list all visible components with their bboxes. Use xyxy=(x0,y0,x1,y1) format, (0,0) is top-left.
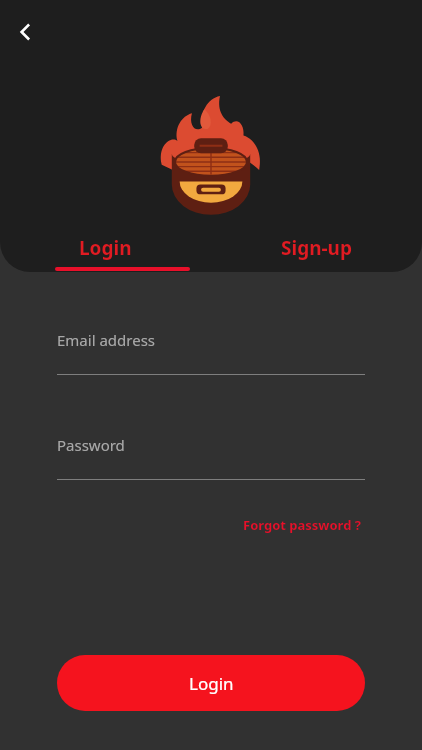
staticText: Forgot password ? xyxy=(243,516,361,534)
staticText: Login xyxy=(79,235,132,261)
button[interactable]: Login xyxy=(57,655,365,711)
staticText: Email address xyxy=(57,330,156,350)
button[interactable]: Login xyxy=(0,224,211,272)
button[interactable]: Back xyxy=(8,15,42,49)
staticText: Sign-up xyxy=(281,235,352,261)
button[interactable]: Password xyxy=(57,435,365,480)
button[interactable]: Forgot password ? xyxy=(239,512,365,538)
button[interactable]: Sign-up xyxy=(211,224,422,272)
button[interactable]: Email address xyxy=(57,330,365,375)
staticText: Login xyxy=(189,672,234,695)
staticText: Password xyxy=(57,435,125,455)
